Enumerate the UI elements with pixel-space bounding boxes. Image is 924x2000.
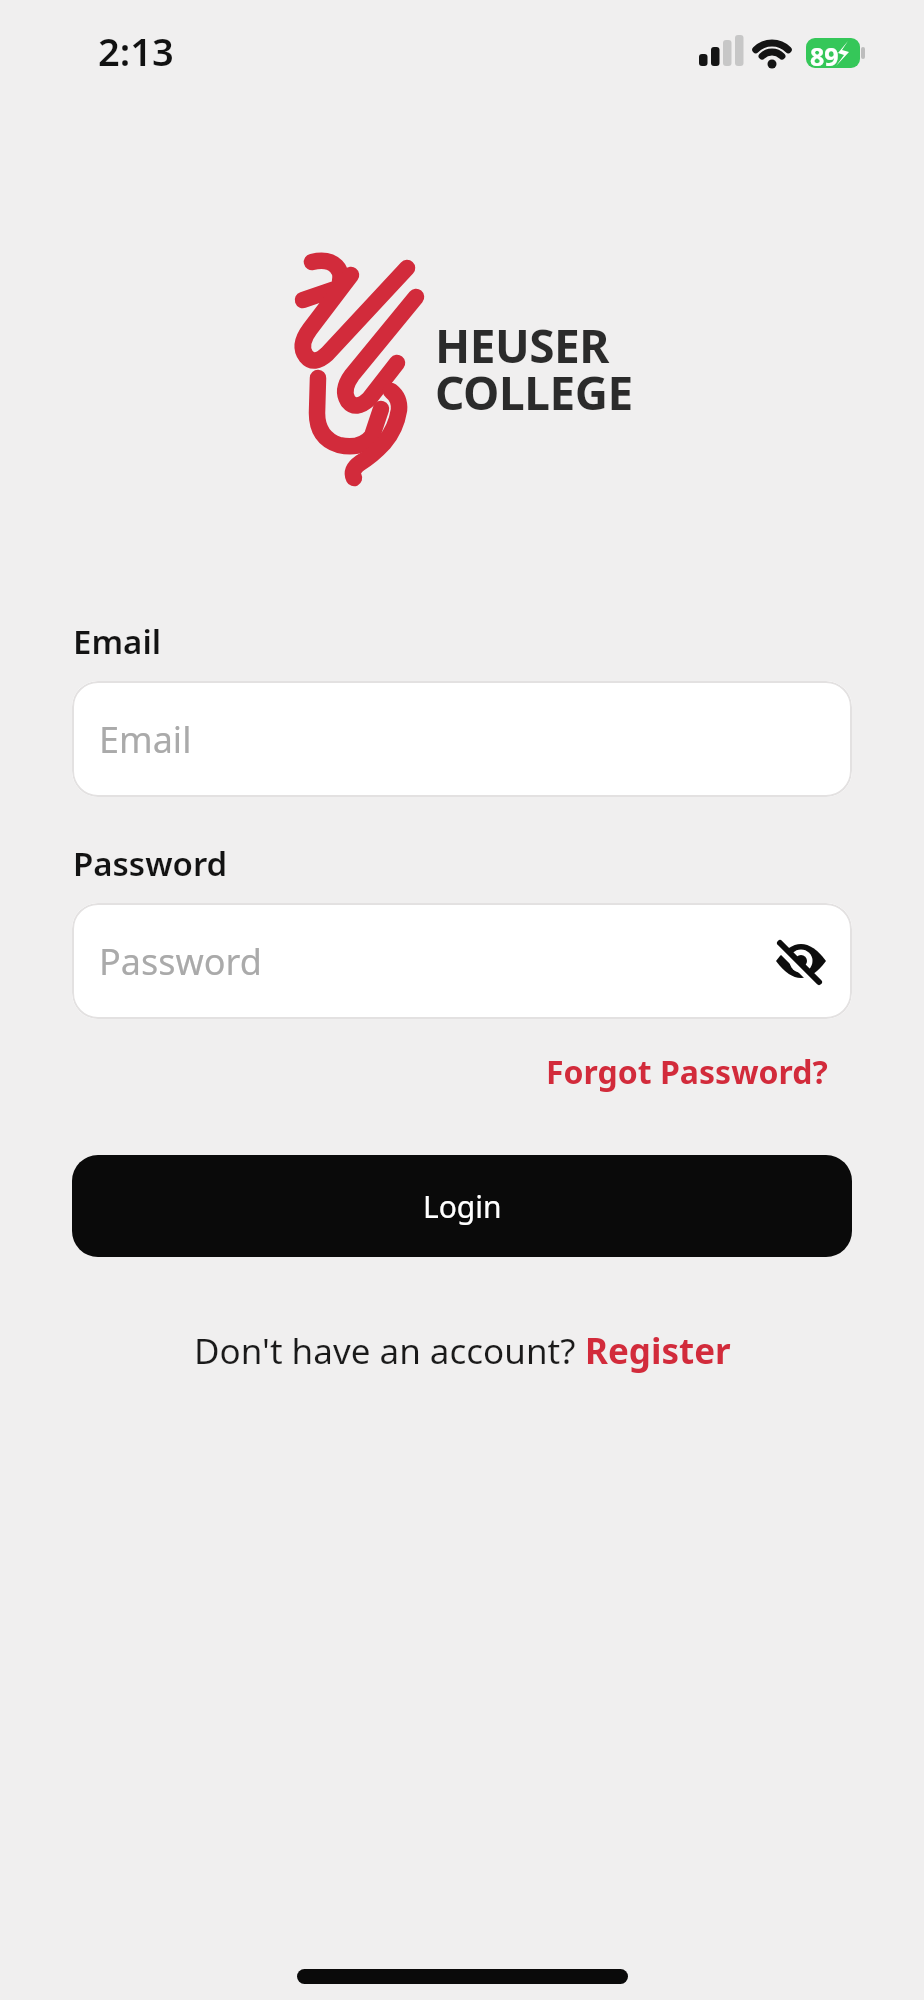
- staticText: Password: [73, 841, 228, 886]
- staticText: 2:13: [98, 25, 174, 77]
- staticText: Register: [585, 1327, 731, 1375]
- staticText: Don't have an account?: [194, 1327, 585, 1375]
- staticText: Email: [99, 715, 192, 764]
- button[interactable]: Login: [72, 1155, 852, 1257]
- staticText: Password: [99, 937, 262, 986]
- staticText: Email: [73, 619, 162, 664]
- staticText: Login: [423, 1186, 502, 1227]
- staticText: COLLEGE: [435, 361, 633, 424]
- staticText: HEUSER: [435, 314, 610, 377]
- button[interactable]: Password: [72, 903, 852, 1019]
- staticText: 89: [810, 39, 839, 73]
- button[interactable]: [774, 934, 828, 988]
- button[interactable]: Email: [72, 681, 852, 797]
- button[interactable]: Forgot Password?: [546, 1050, 828, 1094]
- button[interactable]: Don't have an account?: [194, 1327, 731, 1375]
